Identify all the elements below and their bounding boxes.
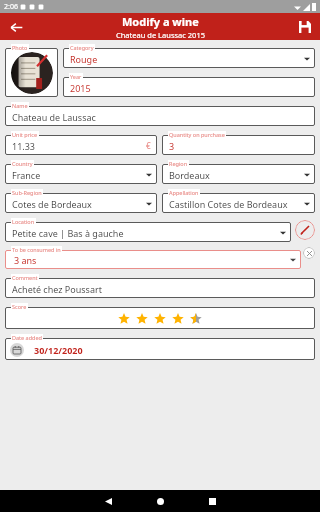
- staticText: 3 ans: [14, 254, 37, 266]
- staticText: Castillon Cotes de Bordeaux: [169, 198, 288, 210]
- staticText: Unit price: [12, 131, 38, 138]
- staticText: Sub-Region: [12, 189, 42, 196]
- staticText: Chateau de Laussac 2015: [116, 30, 205, 40]
- button[interactable]: Back: [93, 490, 123, 512]
- button[interactable]: Castillon Cotes de Bordeaux: [162, 194, 315, 213]
- staticText: Category: [70, 44, 94, 51]
- staticText: 3: [169, 140, 175, 152]
- button[interactable]: Clear: [303, 247, 315, 259]
- button[interactable]: [5, 308, 315, 329]
- staticText: 11.33: [12, 140, 36, 152]
- button[interactable]: Wine photo: [7, 51, 56, 95]
- button[interactable]: Rouge: [63, 49, 315, 68]
- staticText: Name: [12, 102, 28, 109]
- button[interactable]: 2015: [63, 78, 315, 97]
- staticText: Modify a wine: [122, 14, 199, 29]
- button[interactable]: Bordeaux: [162, 165, 315, 184]
- button[interactable]: Home: [145, 490, 175, 512]
- staticText: 2:06: [4, 2, 18, 12]
- button[interactable]: Cotes de Bordeaux: [5, 194, 157, 213]
- staticText: Country: [12, 160, 33, 167]
- staticText: Bordeaux: [169, 169, 210, 181]
- button[interactable]: 30/12/2020: [5, 339, 315, 360]
- staticText: Photo: [12, 44, 28, 51]
- staticText: Rouge: [70, 53, 98, 65]
- button[interactable]: 3 ans: [5, 251, 301, 269]
- staticText: Year: [70, 73, 82, 80]
- staticText: Chateau de Laussac: [12, 111, 96, 123]
- button[interactable]: Chateau de Laussac: [5, 107, 315, 126]
- staticText: Appellation: [169, 189, 199, 196]
- button[interactable]: Acheté chez Poussart: [5, 279, 315, 298]
- button[interactable]: 11.33: [5, 136, 157, 155]
- button[interactable]: Edit location: [295, 220, 315, 240]
- staticText: Petite cave | Bas à gauche: [12, 227, 124, 239]
- staticText: To be consumed in: [12, 246, 61, 253]
- button[interactable]: 3: [162, 136, 315, 155]
- button[interactable]: France: [5, 165, 157, 184]
- staticText: Date added: [12, 334, 42, 341]
- staticText: Acheté chez Poussart: [12, 283, 102, 295]
- staticText: Cotes de Bordeaux: [12, 198, 92, 210]
- button[interactable]: Save: [295, 17, 315, 37]
- staticText: Score: [12, 303, 27, 310]
- staticText: Quantity on purchase: [169, 131, 225, 138]
- staticText: 30/12/2020: [34, 344, 83, 356]
- button[interactable]: Recents: [197, 490, 227, 512]
- staticText: France: [12, 169, 41, 181]
- staticText: 2015: [70, 82, 91, 94]
- staticText: €: [146, 140, 151, 151]
- staticText: Location: [12, 218, 35, 225]
- button[interactable]: Petite cave | Bas à gauche: [5, 223, 291, 242]
- button[interactable]: Back: [6, 17, 26, 37]
- staticText: Region: [169, 160, 188, 167]
- staticText: Comment: [12, 274, 38, 281]
